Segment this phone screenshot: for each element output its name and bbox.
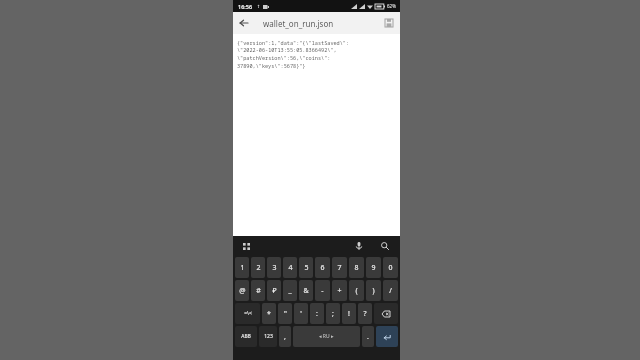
button[interactable]: @ [235,280,249,301]
staticText: =\< [244,310,252,317]
button[interactable]: + [332,280,347,301]
button[interactable]: Enter [376,326,398,347]
staticText: ! [348,309,350,319]
staticText: 6 [320,263,325,273]
button[interactable]: ( [349,280,364,301]
button[interactable]: 8 [349,257,364,278]
button[interactable]: 4 [283,257,297,278]
staticText: 4 [288,263,293,273]
staticText: : [316,309,318,319]
staticText: - [321,286,324,296]
staticText: ) [372,286,375,296]
button[interactable]: ? [358,303,372,324]
staticText: 8 [354,263,359,273]
button[interactable]: ◂ RU ▸ [293,326,360,347]
button[interactable]: ; [326,303,340,324]
button[interactable]: Search [378,239,392,253]
button[interactable]: =\< [235,303,260,324]
button[interactable]: 6 [315,257,330,278]
button[interactable]: / [383,280,398,301]
button[interactable]: _ [283,280,297,301]
staticText: 123 [264,333,273,340]
staticText: @ [239,286,246,296]
button[interactable]: 123 [259,326,277,347]
button[interactable]: Save [378,12,400,34]
button[interactable]: Back [233,12,255,34]
button[interactable]: . [362,326,374,347]
staticText: # [256,286,261,296]
staticText: ? [363,309,367,319]
button[interactable]: & [299,280,313,301]
staticText: ; [332,309,334,319]
button[interactable]: 7 [332,257,347,278]
staticText: {"version":1,"data":"{\"lastSaved\": \"2… [237,39,350,69]
button[interactable]: 1 [235,257,249,278]
button[interactable]: ' [294,303,308,324]
button[interactable]: Keyboard layouts [239,239,253,253]
staticText: / [389,286,392,296]
staticText: 9 [371,263,376,273]
button[interactable]: * [262,303,276,324]
staticText: 5 [304,263,309,273]
staticText: ' [300,309,302,319]
button[interactable]: # [251,280,265,301]
button[interactable]: : [310,303,324,324]
staticText: ₽ [272,286,277,296]
staticText: 0 [388,263,393,273]
staticText: , [284,332,286,342]
button[interactable]: 9 [366,257,381,278]
staticText: АБВ [241,333,251,340]
staticText: 3 [272,263,277,273]
staticText: _ [288,286,292,296]
button[interactable]: - [315,280,330,301]
staticText: 1 [240,263,245,273]
button[interactable]: Backspace [374,303,398,324]
staticText: & [303,286,309,296]
button[interactable]: 2 [251,257,265,278]
button[interactable]: , [279,326,291,347]
staticText: + [337,286,342,296]
button[interactable]: ) [366,280,381,301]
staticText: 62% [387,3,396,9]
staticText: 7 [337,263,342,273]
staticText: . [367,332,369,342]
staticText: ( [355,286,358,296]
staticText: ◂ RU ▸ [319,333,334,340]
button[interactable]: 3 [267,257,281,278]
button[interactable]: ! [342,303,356,324]
button[interactable]: АБВ [235,326,257,347]
button[interactable]: 0 [383,257,398,278]
staticText: * [267,309,271,319]
button[interactable]: 5 [299,257,313,278]
staticText: wallet_on_run.json [263,18,378,29]
button[interactable]: Voice input [352,239,366,253]
button[interactable]: " [278,303,292,324]
staticText: 16:56 [238,3,253,10]
staticText: 2 [256,263,261,273]
button[interactable]: ₽ [267,280,281,301]
staticText: " [284,309,287,319]
